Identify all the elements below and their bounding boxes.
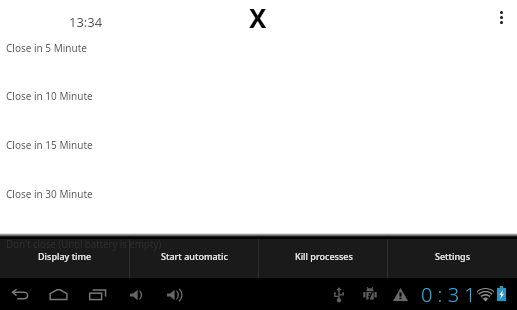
button[interactable]: Close in 30 Minute [0,181,517,229]
button[interactable]: More options [488,4,514,30]
staticText: Close in 10 Minute [6,89,93,103]
staticText: Close in 30 Minute [6,187,93,201]
staticText: Kill processes [295,250,353,262]
staticText: 0:31 [421,281,481,308]
staticText: Display time [38,250,92,262]
button[interactable]: Recent apps [89,289,107,300]
button[interactable]: Back [11,289,29,300]
button[interactable]: Volume up [167,289,183,301]
button[interactable]: Don't close (Until battery is empty) [0,231,517,267]
staticText: Don't close (Until battery is empty) [6,237,161,251]
staticText: Start automatic [161,250,228,262]
button[interactable]: Close in 15 Minute [0,132,517,180]
button[interactable]: Start automatic [130,239,259,278]
button[interactable]: Home [49,289,68,300]
staticText: Close in 15 Minute [6,138,93,152]
button[interactable]: Volume down [130,289,143,301]
button[interactable]: Display time [0,239,130,278]
staticText: X [249,0,267,28]
staticText: Close in 5 Minute [6,41,87,55]
staticText: Settings [435,250,471,262]
button[interactable]: Settings [388,239,517,278]
button[interactable]: Kill processes [259,239,388,278]
button[interactable]: Close in 5 Minute [0,35,517,83]
staticText: 13:34 [69,13,103,31]
button[interactable]: Close in 10 Minute [0,83,517,131]
button[interactable]: Close [244,0,272,28]
